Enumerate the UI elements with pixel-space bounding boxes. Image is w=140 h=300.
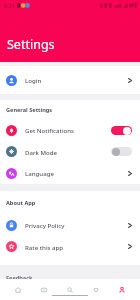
button[interactable]: Rate this app xyxy=(0,236,140,257)
button[interactable]: Dark Mode xyxy=(0,141,140,162)
button[interactable]: Favourites xyxy=(88,282,104,298)
staticText: Settings xyxy=(7,36,55,53)
staticText: Privacy Policy xyxy=(25,221,65,229)
button[interactable]: Search xyxy=(62,282,78,298)
button[interactable]: Switch on xyxy=(111,126,132,135)
button[interactable]: Videos xyxy=(36,282,52,298)
other: Open xyxy=(128,244,132,249)
staticText: Rate this app xyxy=(25,243,64,251)
button[interactable]: Login xyxy=(0,66,140,94)
staticText: General Settings xyxy=(6,106,53,114)
staticText: Login xyxy=(25,76,42,84)
other: Open xyxy=(128,223,132,228)
other: Open xyxy=(128,171,132,176)
button[interactable]: Privacy Policy xyxy=(0,214,140,236)
staticText: About App xyxy=(6,199,36,207)
staticText: Feedback xyxy=(6,274,33,282)
button[interactable]: Profile xyxy=(114,282,130,298)
staticText: 8:21 xyxy=(4,2,15,9)
button[interactable]: Switch off xyxy=(111,147,132,156)
button[interactable]: Home xyxy=(10,282,26,298)
other: Open xyxy=(128,78,132,83)
button[interactable]: Get Notifications xyxy=(0,119,140,141)
button[interactable]: Language xyxy=(0,162,140,184)
staticText: Language xyxy=(25,169,54,177)
staticText: Dark Mode xyxy=(25,148,58,156)
staticText: Get Notifications xyxy=(25,126,75,134)
